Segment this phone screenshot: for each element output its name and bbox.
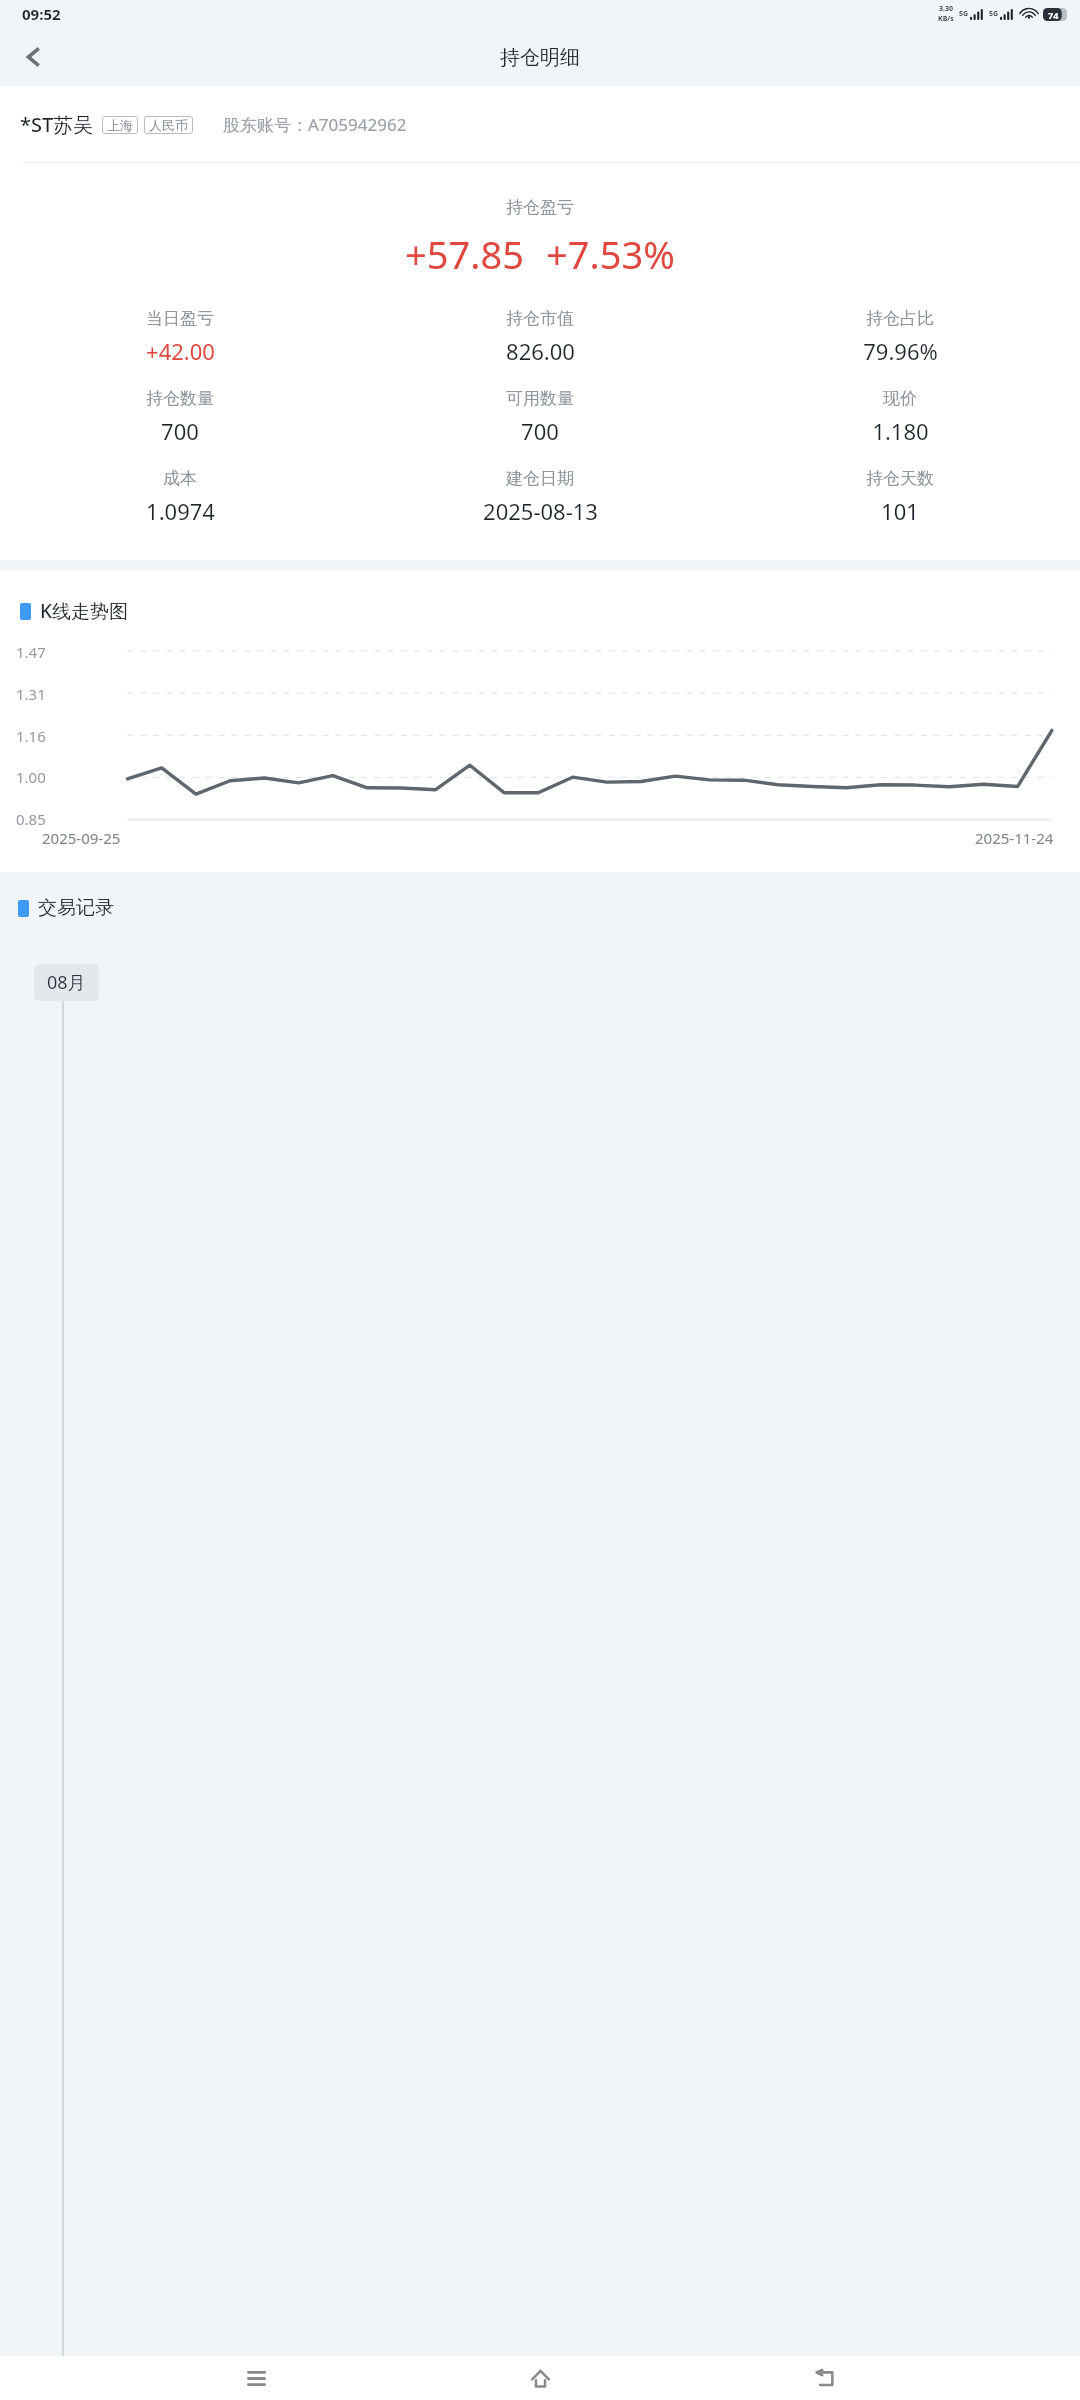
staticText: K线走势图	[40, 598, 129, 624]
button[interactable]: 返回	[796, 2356, 854, 2400]
staticText: 700	[161, 416, 199, 446]
staticText: 持仓数量	[146, 388, 214, 409]
button[interactable]: 最近任务	[227, 2356, 285, 2400]
button[interactable]: 08月	[34, 964, 99, 1001]
staticText: 826.00	[506, 336, 575, 366]
staticText: 74	[1048, 9, 1059, 21]
staticText: 0.85	[16, 809, 46, 828]
staticText: +57.85	[405, 228, 524, 280]
staticText: 5G	[959, 9, 969, 19]
staticText: 2025-09-25	[42, 828, 121, 848]
staticText: 1.0974	[146, 496, 215, 526]
staticText: 上海	[107, 117, 133, 133]
staticText: 2025-11-24	[975, 828, 1054, 848]
staticText: *ST苏吴	[20, 111, 94, 138]
staticText: 持仓明细	[500, 45, 580, 70]
staticText: 1.47	[16, 642, 46, 661]
staticText: 3.30	[939, 4, 953, 14]
staticText: 持仓天数	[866, 468, 934, 489]
staticText: 2025-08-13	[483, 496, 598, 526]
staticText: 79.96%	[863, 336, 938, 366]
staticText: 成本	[163, 468, 197, 489]
staticText: 股东账号：A705942962	[223, 113, 407, 136]
staticText: 当日盈亏	[146, 308, 214, 329]
staticText: 可用数量	[506, 388, 574, 409]
staticText: +7.53%	[546, 228, 675, 280]
staticText: 5G	[989, 9, 999, 19]
staticText: KB/s	[938, 14, 954, 24]
staticText: 1.180	[872, 416, 929, 446]
staticText: 1.31	[16, 684, 46, 703]
staticText: 建仓日期	[506, 468, 574, 489]
staticText: 现价	[883, 388, 917, 409]
staticText: 09:52	[22, 4, 61, 24]
staticText: 1.00	[16, 767, 46, 786]
staticText: 101	[881, 496, 919, 526]
staticText: 1.16	[16, 726, 46, 745]
button[interactable]: 返回	[8, 31, 60, 83]
staticText: +42.00	[146, 336, 215, 366]
staticText: 人民币	[149, 117, 188, 133]
staticText: 持仓占比	[866, 308, 934, 329]
staticText: 持仓市值	[506, 308, 574, 329]
staticText: 700	[521, 416, 559, 446]
button[interactable]: 主屏幕	[511, 2356, 569, 2400]
staticText: 交易记录	[38, 896, 114, 920]
staticText: 08月	[47, 970, 86, 995]
staticText: 持仓盈亏	[506, 197, 574, 218]
